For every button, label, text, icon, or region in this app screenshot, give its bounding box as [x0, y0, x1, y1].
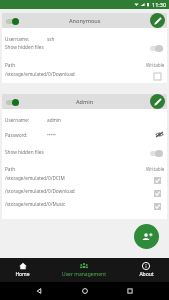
staticText: Show hidden files	[5, 149, 44, 155]
staticText: Username:	[5, 36, 47, 42]
button[interactable]: Writable	[153, 203, 162, 210]
button[interactable]: Writable	[153, 73, 162, 80]
staticText: User management	[62, 271, 106, 278]
staticText: Password:	[5, 132, 47, 138]
staticText: /storage/emulated/0/Download	[5, 188, 75, 194]
staticText: /storage/emulated/0/Download	[5, 71, 75, 77]
button[interactable]: Show password	[154, 131, 165, 138]
button[interactable]: Home	[0, 258, 45, 282]
button[interactable]: Edit user	[150, 13, 165, 28]
button[interactable]: About	[123, 258, 169, 282]
staticText: /storage/emulated/0/Music	[5, 201, 66, 207]
staticText: Writable	[146, 166, 165, 172]
button[interactable]: Writable	[153, 190, 162, 197]
button[interactable]: Recents	[123, 284, 137, 298]
staticText: ssh	[47, 36, 55, 42]
button[interactable]: Toggle	[149, 45, 163, 52]
button[interactable]: Show hidden files	[5, 43, 165, 50]
button[interactable]: Home	[78, 284, 92, 298]
button[interactable]: Edit user	[150, 94, 165, 109]
button[interactable]: Toggle	[5, 17, 19, 26]
button[interactable]: Toggle	[5, 98, 19, 107]
staticText: 11:30	[152, 1, 167, 8]
staticText: Show hidden files	[5, 44, 44, 50]
button[interactable]: Back	[32, 284, 46, 298]
staticText: Anonymous	[69, 17, 101, 24]
staticText: admin	[47, 117, 62, 123]
button[interactable]: Add user	[134, 224, 159, 249]
staticText: Path	[5, 62, 16, 68]
button[interactable]: Toggle	[149, 150, 163, 157]
staticText: Admin	[76, 98, 94, 105]
staticText: Home	[15, 271, 30, 278]
staticText: Writable	[146, 62, 165, 68]
button[interactable]: Writable	[153, 177, 162, 184]
button[interactable]: User management	[45, 258, 123, 282]
staticText: Username:	[5, 117, 47, 123]
staticText: /storage/emulated/0/DCIM	[5, 175, 65, 181]
button[interactable]: Show hidden files	[5, 148, 165, 155]
staticText: About	[139, 271, 154, 278]
staticText: Path	[5, 166, 16, 172]
staticText: •••••	[47, 132, 56, 138]
